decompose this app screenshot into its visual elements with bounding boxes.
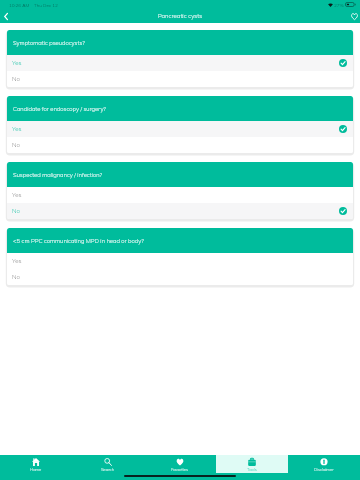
staticText: Pancreatic cysts: [0, 12, 360, 20]
staticText: Search: [101, 467, 115, 472]
staticText: Yes: [12, 191, 22, 199]
staticText: 27%: [334, 2, 344, 8]
button[interactable]: Search: [72, 455, 144, 473]
staticText: Yes: [12, 59, 22, 67]
staticText: Symptomatic pseudocysts?: [13, 39, 85, 46]
staticText: Disclaimer: [314, 467, 334, 472]
button[interactable]: Tools: [216, 455, 288, 473]
staticText: Candidate for endoscopy / surgery?: [13, 105, 106, 112]
staticText: <5 cm PPC communicating MPD in head or b…: [13, 237, 144, 244]
button[interactable]: Home: [0, 455, 72, 473]
button[interactable]: Favorites: [144, 455, 216, 473]
staticText: Favorites: [171, 467, 189, 472]
staticText: No: [12, 141, 20, 149]
button[interactable]: Yes: [7, 55, 353, 71]
staticText: No: [12, 273, 20, 281]
staticText: Yes: [12, 125, 22, 133]
staticText: Tools: [247, 467, 257, 472]
staticText: No: [12, 75, 20, 83]
button[interactable]: Favorite: [348, 9, 360, 23]
button[interactable]: No: [7, 203, 353, 219]
staticText: Home: [30, 467, 42, 472]
staticText: Yes: [12, 257, 22, 265]
button[interactable]: Yes: [7, 121, 353, 137]
staticText: No: [12, 207, 20, 215]
staticText: 10:26 AM: [9, 2, 30, 8]
button[interactable]: Disclaimer: [288, 455, 360, 473]
button[interactable]: Back: [0, 9, 14, 23]
staticText: Suspected malignancy / infection?: [13, 171, 103, 178]
staticText: Thu Dec 12: [34, 2, 58, 8]
